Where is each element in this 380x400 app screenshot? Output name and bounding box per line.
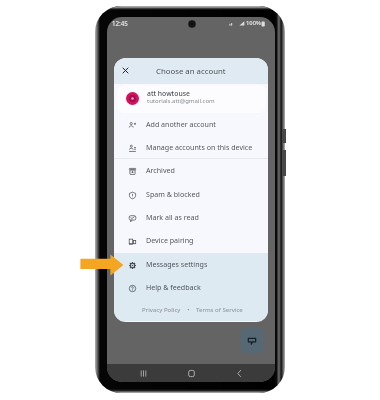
button[interactable]: Spam & blocked <box>114 184 268 207</box>
staticText: Device pairing <box>146 235 194 245</box>
button[interactable]: Recent apps <box>135 366 151 380</box>
button[interactable]: Help & feedback <box>114 277 268 300</box>
button[interactable]: Manage accounts on this device <box>114 137 268 160</box>
staticText: Spam & blocked <box>146 189 200 199</box>
staticText: Archived <box>146 165 175 175</box>
staticText: att howtouse <box>147 89 190 98</box>
staticText: Messages settings <box>146 259 208 269</box>
staticText: Help & feedback <box>146 282 201 292</box>
staticText: 12:45 <box>112 19 128 27</box>
button[interactable]: Back <box>231 366 247 380</box>
button[interactable]: att howtouse <box>117 85 266 113</box>
staticText: Add another account <box>146 119 216 129</box>
button[interactable]: Add another account <box>114 114 268 137</box>
button[interactable]: Mark all as read <box>114 207 268 230</box>
staticText: • <box>181 305 196 313</box>
button[interactable]: Home <box>183 366 199 380</box>
button[interactable]: Messages settings <box>114 254 268 277</box>
button[interactable]: Device pairing <box>114 230 268 253</box>
button[interactable]: Start new chat <box>240 328 264 353</box>
staticText: Mark all as read <box>146 212 199 222</box>
button[interactable]: Privacy Policy <box>142 305 181 313</box>
button[interactable]: Close <box>118 63 133 78</box>
button[interactable]: Archived <box>114 160 268 183</box>
staticText: Choose an account <box>156 66 226 77</box>
button[interactable]: Terms of Service <box>196 305 243 313</box>
staticText: tutorials.att@gmail.com <box>147 97 215 105</box>
staticText: 100% <box>246 19 261 27</box>
staticText: Manage accounts on this device <box>146 142 253 152</box>
